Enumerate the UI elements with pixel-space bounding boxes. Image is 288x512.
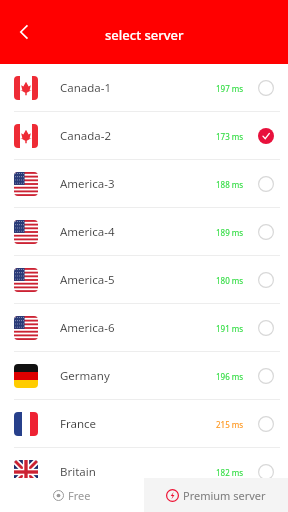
staticText: select server — [105, 26, 184, 44]
staticText: 191 ms — [216, 323, 244, 334]
staticText: France — [60, 416, 97, 432]
button[interactable]: Canada-2 — [0, 112, 288, 160]
staticText: America-5 — [60, 272, 115, 288]
staticText: 188 ms — [216, 179, 244, 190]
staticText: Canada-1 — [60, 80, 112, 96]
staticText: 173 ms — [216, 131, 244, 142]
staticText: 180 ms — [216, 275, 244, 286]
staticText: Canada-2 — [60, 128, 112, 144]
staticText: Britain — [60, 464, 96, 480]
staticText: America-4 — [60, 224, 115, 240]
staticText: America-6 — [60, 320, 115, 336]
staticText: 215 ms — [216, 419, 244, 430]
button[interactable]: Britain — [0, 448, 288, 496]
button[interactable]: Free — [0, 478, 144, 512]
staticText: America-3 — [60, 176, 115, 192]
button[interactable]: America-6 — [0, 304, 288, 352]
staticText: 196 ms — [216, 371, 244, 382]
button[interactable]: Premium server — [144, 478, 288, 512]
staticText: 189 ms — [216, 227, 244, 238]
staticText: Premium server — [183, 488, 266, 503]
staticText: 197 ms — [216, 83, 244, 94]
button[interactable]: America-4 — [0, 208, 288, 256]
button[interactable]: Back — [4, 12, 44, 52]
button[interactable]: America-3 — [0, 160, 288, 208]
button[interactable]: America-5 — [0, 256, 288, 304]
button[interactable]: Canada-1 — [0, 64, 288, 112]
staticText: Free — [68, 488, 91, 503]
button[interactable]: France — [0, 400, 288, 448]
staticText: Germany — [60, 368, 110, 384]
button[interactable]: Germany — [0, 352, 288, 400]
staticText: 182 ms — [216, 467, 244, 478]
